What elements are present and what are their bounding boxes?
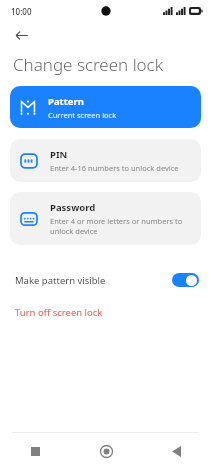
button[interactable]: Turn off screen lock [0, 304, 211, 321]
staticText: Current screen lock [48, 110, 117, 120]
other: Make pattern visible toggle [172, 273, 199, 287]
button[interactable]: Recent apps [0, 433, 71, 470]
staticText: PIN [50, 148, 68, 161]
staticText: Turn off screen lock [15, 306, 103, 319]
staticText: Enter 4 or more letters or numbers to un… [50, 216, 187, 236]
button[interactable]: Pattern [10, 86, 201, 128]
button[interactable]: Make pattern visible [0, 267, 211, 293]
staticText: Password [50, 201, 96, 214]
staticText: 10:00 [11, 6, 32, 17]
button[interactable]: Home [71, 433, 141, 470]
staticText: Make pattern visible [15, 274, 106, 287]
button[interactable]: PIN [10, 139, 201, 182]
button[interactable]: Back [141, 433, 211, 470]
button[interactable]: Back [8, 22, 34, 48]
staticText: Enter 4-16 numbers to unlock device [50, 163, 179, 173]
button[interactable]: Password [10, 192, 201, 245]
staticText: Change screen lock [13, 53, 164, 76]
staticText: Pattern [48, 95, 84, 108]
